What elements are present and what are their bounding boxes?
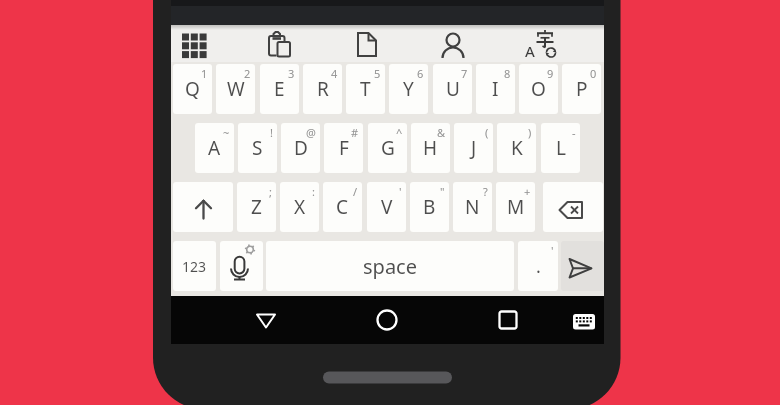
button[interactable]: Y — [389, 64, 428, 114]
staticText: 6 — [417, 66, 424, 81]
button[interactable]: . — [518, 241, 558, 291]
button[interactable]: N — [453, 182, 492, 232]
button[interactable]: A — [524, 28, 558, 62]
staticText: X — [294, 194, 306, 220]
staticText: V — [381, 194, 393, 220]
staticText: 123 — [182, 257, 207, 276]
staticText: Q — [185, 76, 200, 102]
staticText: R — [317, 76, 329, 102]
staticText: ! — [270, 125, 273, 140]
button[interactable]: Z — [237, 182, 276, 232]
staticText: 2 — [244, 66, 251, 81]
staticText: D — [294, 135, 308, 161]
button[interactable] — [179, 29, 209, 59]
button[interactable]: G — [368, 123, 407, 173]
staticText: I — [492, 76, 499, 102]
button[interactable]: C — [323, 182, 362, 232]
staticText: 3 — [288, 66, 295, 81]
staticText: G — [381, 135, 395, 161]
staticText: . — [536, 254, 541, 279]
button[interactable]: B — [410, 182, 449, 232]
button[interactable]: T — [346, 64, 385, 114]
button[interactable]: Q — [173, 64, 212, 114]
button[interactable]: E — [260, 64, 299, 114]
staticText: L — [556, 135, 566, 161]
staticText: 1 — [201, 66, 208, 81]
button[interactable]: D — [281, 123, 320, 173]
button[interactable]: V — [367, 182, 406, 232]
staticText: @ — [306, 125, 316, 140]
staticText: N — [465, 194, 480, 220]
button[interactable]: K — [497, 123, 536, 173]
button[interactable]: W — [216, 64, 255, 114]
button[interactable] — [372, 305, 402, 335]
staticText: U — [446, 76, 460, 102]
button[interactable]: 123 — [173, 241, 216, 291]
staticText: E — [274, 76, 285, 102]
staticText: 9 — [547, 66, 554, 81]
button[interactable]: S — [238, 123, 277, 173]
button[interactable] — [561, 241, 604, 291]
staticText: ' — [399, 184, 402, 199]
staticText: # — [351, 125, 359, 140]
button[interactable]: P — [562, 64, 601, 114]
staticText: " — [440, 184, 445, 199]
staticText: T — [360, 76, 371, 102]
staticText: 8 — [504, 66, 511, 81]
staticText: 7 — [461, 66, 468, 81]
staticText: O — [531, 76, 546, 102]
staticText: + — [524, 184, 531, 199]
staticText: 4 — [331, 66, 338, 81]
staticText: : — [312, 184, 315, 199]
button[interactable] — [173, 182, 233, 232]
staticText: / — [353, 184, 358, 199]
staticText: B — [423, 194, 436, 220]
button[interactable]: F — [324, 123, 363, 173]
staticText: ^ — [396, 125, 403, 140]
button[interactable]: X — [280, 182, 319, 232]
staticText: 5 — [374, 66, 381, 81]
staticText: ? — [483, 184, 488, 199]
button[interactable]: space — [266, 241, 514, 291]
staticText: space — [363, 253, 417, 280]
staticText: 0 — [590, 66, 597, 81]
staticText: J — [471, 135, 477, 161]
button[interactable]: I — [476, 64, 515, 114]
staticText: ( — [485, 125, 489, 140]
staticText: Z — [251, 194, 262, 220]
staticText: F — [339, 135, 349, 161]
staticText: ; — [269, 184, 272, 199]
button[interactable]: L — [541, 123, 580, 173]
button[interactable] — [220, 241, 263, 291]
staticText: A — [525, 41, 535, 61]
button[interactable]: J — [454, 123, 493, 173]
button[interactable] — [438, 29, 468, 59]
staticText: A — [208, 135, 221, 161]
button[interactable]: O — [519, 64, 558, 114]
staticText: & — [437, 125, 446, 140]
staticText: ~ — [223, 125, 230, 140]
button[interactable] — [352, 29, 382, 59]
staticText: C — [336, 194, 349, 220]
staticText: K — [511, 135, 523, 161]
staticText: ) — [528, 125, 532, 140]
button[interactable]: H — [411, 123, 450, 173]
staticText: S — [252, 135, 263, 161]
button[interactable]: R — [303, 64, 342, 114]
staticText: P — [576, 76, 588, 102]
staticText: H — [423, 135, 438, 161]
button[interactable]: M — [496, 182, 535, 232]
button[interactable]: U — [433, 64, 472, 114]
staticText: W — [227, 76, 245, 102]
staticText: ' — [551, 243, 554, 258]
staticText: Y — [403, 76, 414, 102]
staticText: M — [507, 194, 525, 220]
staticText: - — [572, 125, 576, 140]
button[interactable]: A — [195, 123, 234, 173]
button[interactable] — [493, 305, 523, 335]
button[interactable] — [543, 182, 603, 232]
button[interactable] — [251, 305, 281, 335]
button[interactable] — [570, 307, 600, 337]
button[interactable] — [265, 29, 295, 59]
